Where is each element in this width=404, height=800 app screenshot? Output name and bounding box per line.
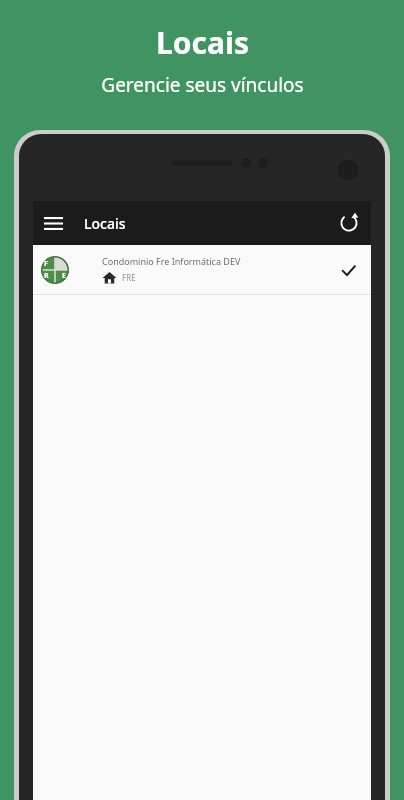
button[interactable]: Refresh xyxy=(327,201,371,245)
staticText: E xyxy=(62,271,66,281)
button[interactable]: Selected xyxy=(335,257,361,283)
staticText: R xyxy=(44,271,49,281)
button[interactable]: Open navigation menu xyxy=(33,203,73,243)
staticText: FRE xyxy=(122,272,136,283)
staticText: F xyxy=(44,259,48,269)
staticText: Gerencie seus vínculos xyxy=(101,72,304,98)
button[interactable]: F xyxy=(33,245,371,294)
staticText: Condominio Fre Informática DEV xyxy=(102,255,241,267)
staticText: Locais xyxy=(156,22,249,63)
staticText: Locais xyxy=(84,214,126,233)
